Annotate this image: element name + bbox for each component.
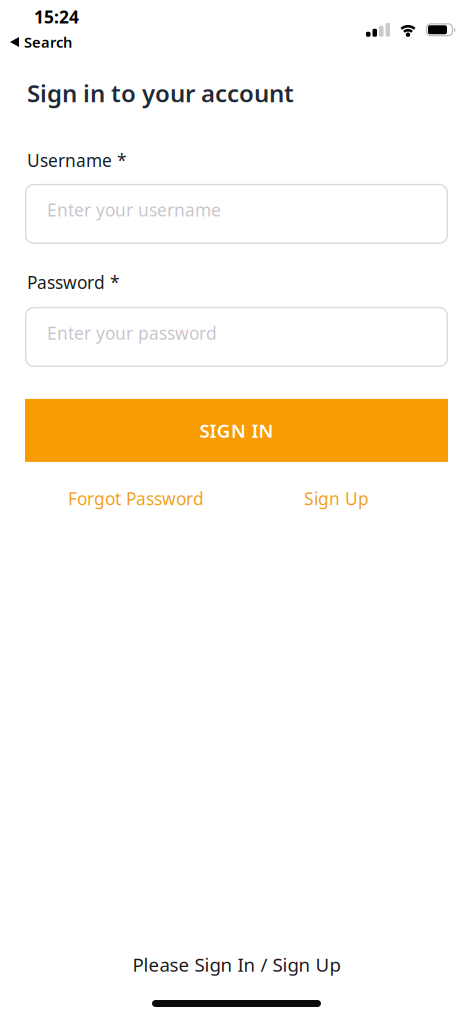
staticText: Search: [24, 32, 72, 52]
staticText: Password *: [27, 271, 120, 294]
button[interactable]: SIGN IN: [25, 399, 448, 462]
staticText: Forgot Password: [68, 487, 204, 510]
button[interactable]: Enter your password: [25, 307, 448, 367]
button[interactable]: Sign Up: [304, 487, 369, 510]
staticText: Sign in to your account: [27, 77, 294, 109]
staticText: SIGN IN: [199, 418, 274, 443]
staticText: 15:24: [34, 5, 79, 28]
staticText: Enter your username: [47, 198, 221, 221]
button[interactable]: Back to Search: [0, 32, 72, 52]
staticText: Enter your password: [47, 321, 217, 344]
staticText: Sign Up: [304, 487, 369, 510]
button[interactable]: Enter your username: [25, 184, 448, 244]
button[interactable]: Forgot Password: [68, 487, 204, 510]
staticText: Please Sign In / Sign Up: [132, 952, 340, 977]
staticText: Username *: [27, 149, 127, 172]
